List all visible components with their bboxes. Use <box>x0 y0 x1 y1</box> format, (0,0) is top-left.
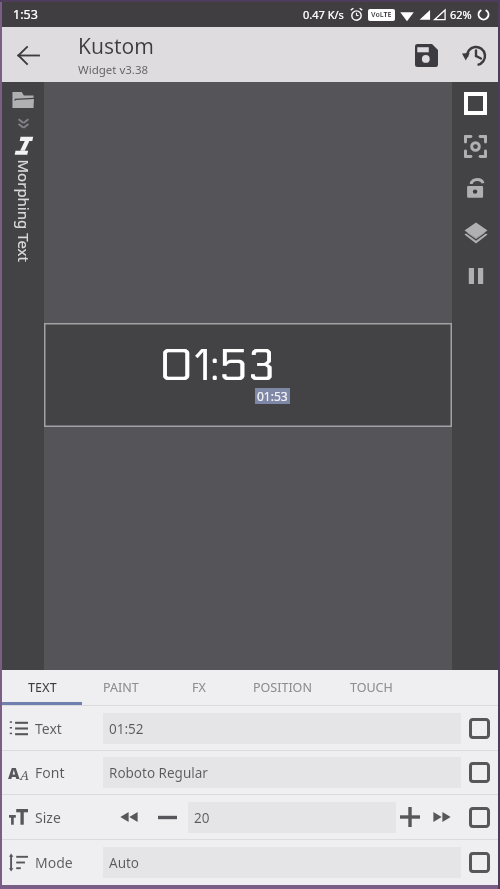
staticText: 0.47 K/s <box>303 7 344 22</box>
staticText: TEXT <box>28 679 57 696</box>
button[interactable]: Unlock <box>454 168 497 211</box>
button[interactable]: Save <box>402 31 450 79</box>
staticText: Font <box>35 763 103 782</box>
button[interactable]: Size <box>2 795 498 839</box>
button[interactable]: Widget size <box>454 82 497 125</box>
staticText: Kustom <box>78 32 154 61</box>
button[interactable]: Toggle formula <box>461 706 498 750</box>
staticText: 01:53 <box>257 388 288 404</box>
button[interactable]: Toggle formula <box>461 840 498 885</box>
button[interactable]: Increase fast <box>423 795 461 839</box>
staticText: A <box>8 762 20 784</box>
staticText: 01:52 <box>109 720 144 738</box>
staticText: POSITION <box>253 679 312 696</box>
button[interactable]: TEXT <box>2 670 82 705</box>
button[interactable]: Text module <box>10 132 37 159</box>
staticText: Roboto Regular <box>109 764 208 782</box>
button[interactable]: Decrease <box>146 795 188 839</box>
button[interactable]: Pause <box>454 254 497 297</box>
button[interactable]: Text <box>2 706 498 750</box>
staticText: FX <box>192 679 206 696</box>
button[interactable]: History <box>450 31 498 79</box>
button[interactable]: Toggle formula <box>461 751 498 794</box>
button[interactable]: POSITION <box>238 670 326 705</box>
button[interactable]: A <box>2 751 498 794</box>
button[interactable]: Open preset <box>9 86 37 114</box>
staticText: 20 <box>194 809 210 827</box>
staticText: TOUCH <box>350 679 393 696</box>
staticText: 01:53 <box>159 340 276 392</box>
staticText: 62% <box>450 7 472 22</box>
button[interactable]: Back <box>2 29 54 81</box>
staticText: Auto <box>109 854 140 872</box>
staticText: Text <box>35 719 103 738</box>
staticText: A <box>20 766 30 784</box>
staticText: 1:53 <box>13 6 38 23</box>
button[interactable]: TOUCH <box>326 670 417 705</box>
button[interactable]: Decrease fast <box>112 795 146 839</box>
button[interactable]: Fit to screen <box>454 125 497 168</box>
button[interactable]: PAINT <box>82 670 160 705</box>
button[interactable]: Expand <box>14 114 32 132</box>
staticText: Size <box>35 808 112 827</box>
button[interactable]: FX <box>160 670 238 705</box>
staticText: PAINT <box>103 679 139 696</box>
button[interactable]: Layers <box>454 211 497 254</box>
staticText: Morphing Text <box>13 159 33 262</box>
button[interactable]: Toggle formula <box>461 795 498 839</box>
button[interactable]: Mode <box>2 840 498 885</box>
staticText: Widget v3.38 <box>78 62 149 78</box>
staticText: Mode <box>35 853 103 872</box>
button[interactable]: Increase <box>396 795 423 839</box>
staticText: VoLTE <box>371 10 392 20</box>
